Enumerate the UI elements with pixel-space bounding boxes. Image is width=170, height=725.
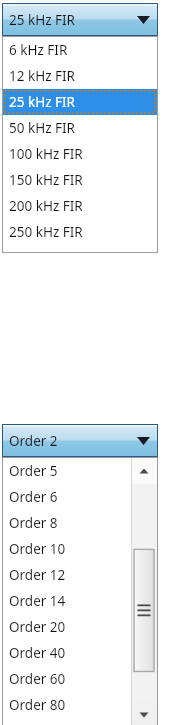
staticText: 6 kHz FIR <box>9 41 68 59</box>
button[interactable]: 12 kHz FIR <box>3 63 157 89</box>
button[interactable]: Order 5 <box>3 458 131 484</box>
button[interactable]: Order 6 <box>3 484 131 510</box>
staticText: Order 40 <box>9 644 66 662</box>
button[interactable]: 25 kHz FIR <box>2 3 158 36</box>
button[interactable]: Order 2 <box>2 424 158 457</box>
button[interactable]: 150 kHz FIR <box>3 167 157 193</box>
button[interactable]: 200 kHz FIR <box>3 193 157 219</box>
staticText: 150 kHz FIR <box>9 171 83 189</box>
button[interactable]: Order 14 <box>3 588 131 614</box>
staticText: 25 kHz FIR <box>9 93 76 111</box>
staticText: Order 12 <box>9 566 66 584</box>
staticText: Order 10 <box>9 540 66 558</box>
button[interactable]: Order 10 <box>3 536 131 562</box>
staticText: 200 kHz FIR <box>9 197 83 215</box>
button[interactable]: Order 8 <box>3 510 131 536</box>
button[interactable]: 6 kHz FIR <box>3 37 157 63</box>
button[interactable]: 100 kHz FIR <box>3 141 157 167</box>
button[interactable]: Order 12 <box>3 562 131 588</box>
staticText: Order 80 <box>9 696 66 714</box>
button[interactable]: 25 kHz FIR <box>3 89 157 115</box>
staticText: Order 20 <box>9 618 66 636</box>
button[interactable]: Order 60 <box>3 666 131 692</box>
staticText: 12 kHz FIR <box>9 67 76 85</box>
staticText: Order 14 <box>9 592 66 610</box>
button[interactable]: Order 20 <box>3 614 131 640</box>
staticText: Order 2 <box>9 432 128 450</box>
button[interactable]: Open Order 2 drop down <box>128 424 158 457</box>
button[interactable]: Order 80 <box>3 692 131 718</box>
button[interactable]: Open 25 kHz FIR drop down <box>128 3 158 36</box>
button[interactable]: 250 kHz FIR <box>3 219 157 245</box>
button[interactable]: Scroll bar <box>131 458 157 725</box>
staticText: Order 5 <box>9 462 58 480</box>
staticText: Order 60 <box>9 670 66 688</box>
staticText: 25 kHz FIR <box>9 11 128 29</box>
staticText: 250 kHz FIR <box>9 223 83 241</box>
staticText: 100 kHz FIR <box>9 145 83 163</box>
staticText: Order 8 <box>9 514 58 532</box>
button[interactable]: 50 kHz FIR <box>3 115 157 141</box>
button[interactable]: Order 40 <box>3 640 131 666</box>
staticText: Order 6 <box>9 488 58 506</box>
staticText: 50 kHz FIR <box>9 119 76 137</box>
